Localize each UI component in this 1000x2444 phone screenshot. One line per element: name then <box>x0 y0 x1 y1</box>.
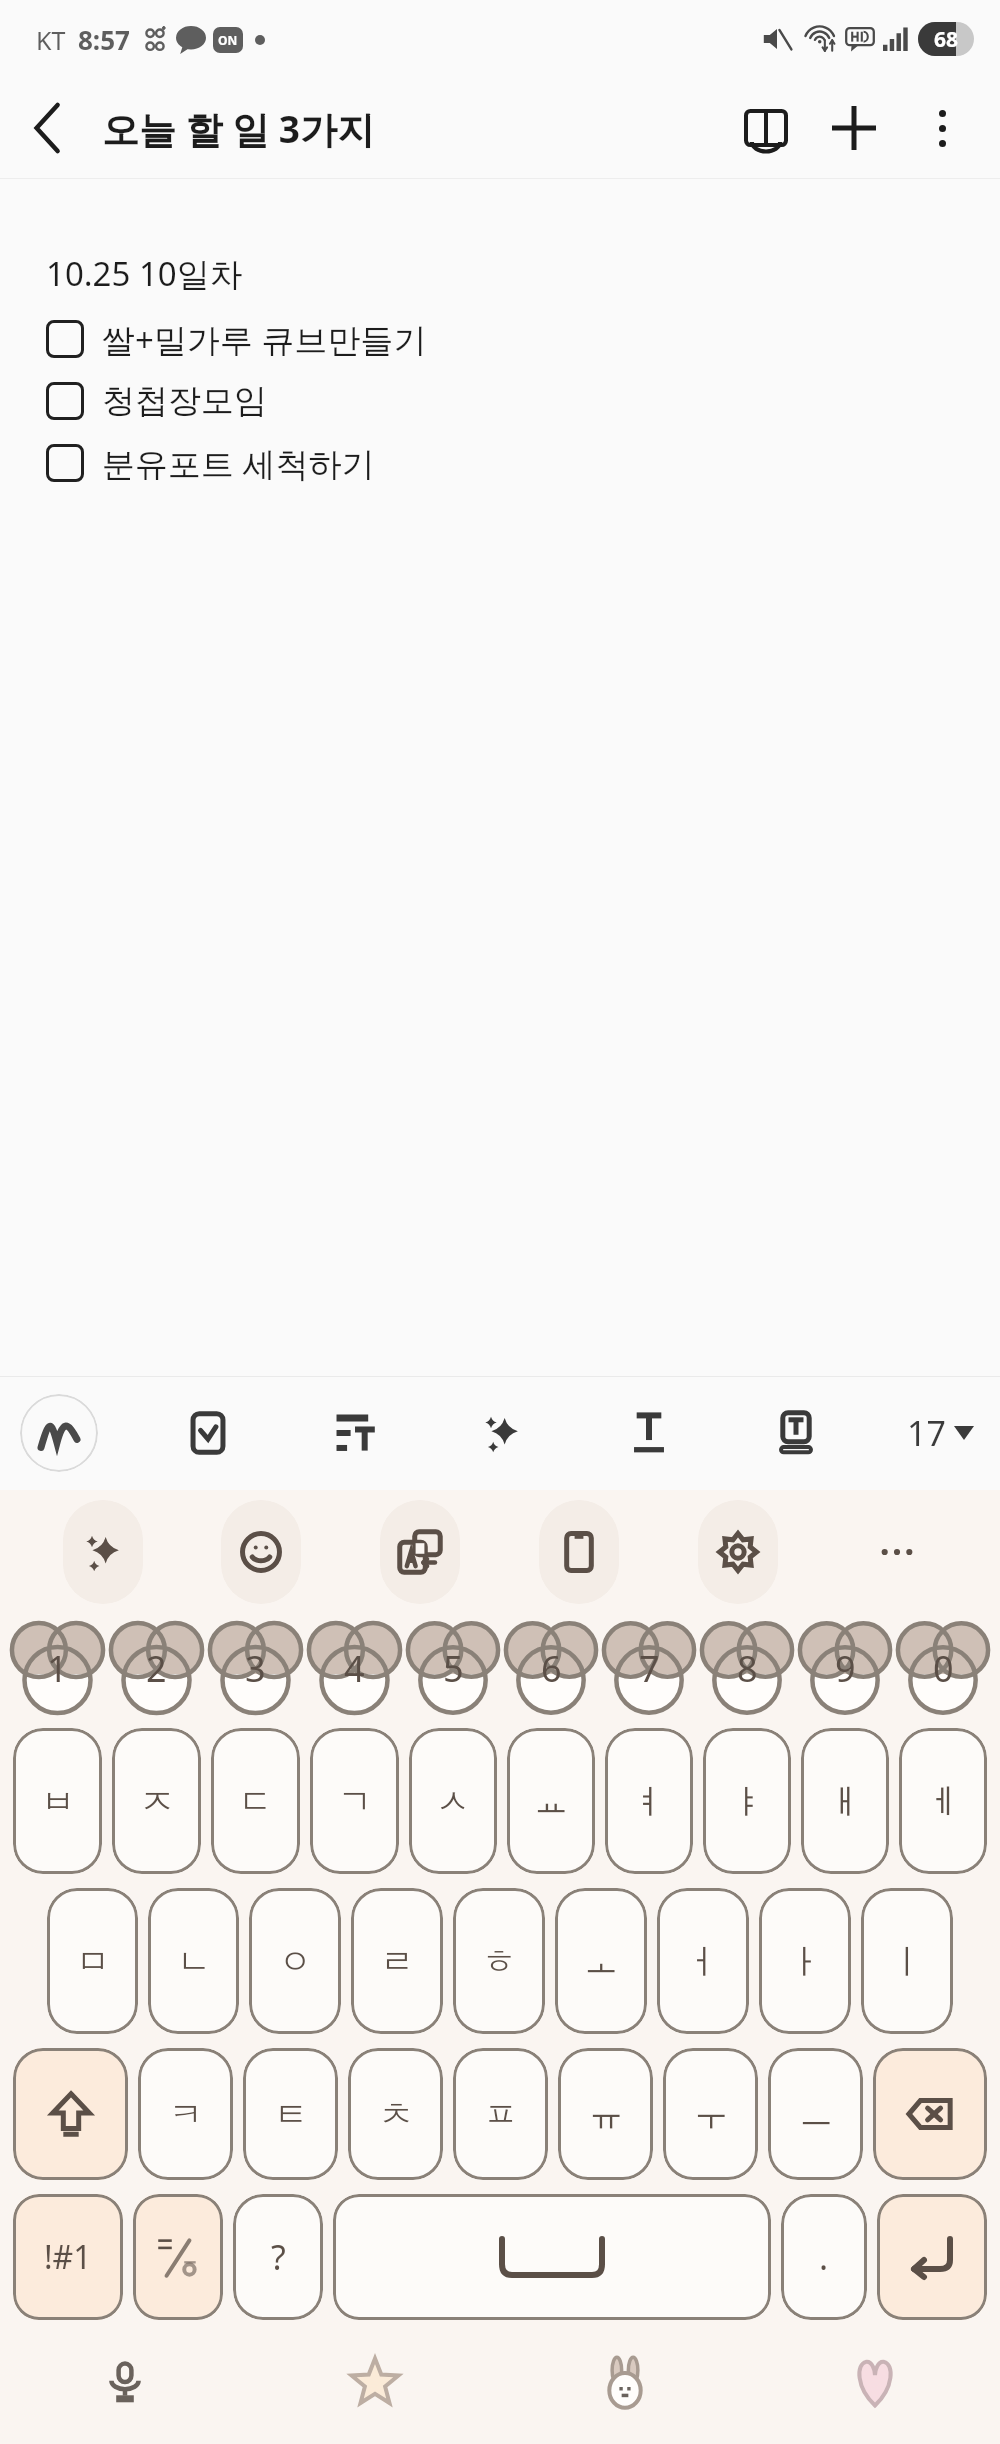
button[interactable]: Emoji <box>221 1500 301 1604</box>
button[interactable]: ㅅ <box>409 1728 497 1874</box>
button[interactable]: ㄷ <box>211 1728 300 1874</box>
button[interactable]: 쌀+밀가루 큐브만들기 <box>46 308 1000 370</box>
button[interactable]: Translate <box>380 1500 460 1604</box>
button[interactable]: 5 <box>407 1618 499 1718</box>
staticText: ㅅ <box>436 1780 470 1823</box>
button[interactable]: 6 <box>505 1618 597 1718</box>
button[interactable]: Pen <box>20 1394 98 1472</box>
staticText: !#1 <box>44 2235 92 2279</box>
button[interactable]: 분유포트 세척하기 <box>46 432 1000 494</box>
button[interactable]: ㅋ <box>138 2048 233 2180</box>
staticText: ㄱ <box>338 1780 372 1823</box>
staticText: 6 <box>541 1644 562 1693</box>
button[interactable]: ㅂ <box>13 1728 102 1874</box>
button[interactable]: 4 <box>308 1618 401 1718</box>
button[interactable]: ㅗ <box>555 1888 647 2034</box>
button[interactable]: ㅛ <box>507 1728 595 1874</box>
button[interactable]: ㅁ <box>47 1888 138 2034</box>
staticText: 68 <box>934 25 959 54</box>
staticText: ㄹ <box>380 1940 414 1983</box>
button[interactable]: ㄴ <box>148 1888 239 2034</box>
button[interactable]: More options <box>898 84 986 172</box>
staticText: ㅓ <box>686 1940 720 1983</box>
button[interactable]: 3 <box>209 1618 302 1718</box>
button[interactable]: ㅐ <box>801 1728 889 1874</box>
button[interactable]: ㅡ <box>768 2048 863 2180</box>
button[interactable]: 8 <box>701 1618 793 1718</box>
button[interactable]: Stickers <box>500 2320 750 2444</box>
button[interactable]: AI assist <box>466 1397 538 1469</box>
button[interactable]: 1 <box>11 1618 104 1718</box>
staticText: ㅎ <box>482 1940 516 1983</box>
button[interactable]: ㅎ <box>453 1888 545 2034</box>
button[interactable]: . <box>781 2194 867 2320</box>
button[interactable]: ㅏ <box>759 1888 851 2034</box>
staticText: ㅇ <box>278 1940 312 1983</box>
button[interactable]: Theme <box>750 2320 1000 2444</box>
button[interactable]: ㅜ <box>663 2048 758 2180</box>
button[interactable]: Shift <box>13 2048 128 2180</box>
button[interactable]: Favorites <box>250 2320 500 2444</box>
button[interactable]: 2 <box>110 1618 203 1718</box>
button[interactable]: ㅓ <box>657 1888 749 2034</box>
button[interactable]: Text color <box>613 1397 685 1469</box>
button[interactable]: 청첩장모임 <box>46 370 1000 432</box>
button[interactable]: Voice input <box>0 2320 250 2444</box>
button[interactable]: Backspace <box>873 2048 987 2180</box>
button[interactable]: ㅠ <box>558 2048 653 2180</box>
button[interactable]: ㅍ <box>453 2048 548 2180</box>
button[interactable]: Highlight <box>760 1397 832 1469</box>
button[interactable]: ㅈ <box>112 1728 201 1874</box>
button[interactable]: Back <box>0 80 96 176</box>
button[interactable]: 17 <box>907 1410 974 1456</box>
button[interactable]: 0 <box>897 1618 989 1718</box>
staticText: ㅑ <box>730 1780 764 1823</box>
staticText: 8 <box>737 1644 758 1693</box>
staticText: . <box>819 2234 829 2280</box>
button[interactable]: Paragraph style <box>319 1397 391 1469</box>
button[interactable]: ㅊ <box>348 2048 443 2180</box>
staticText: ㅊ <box>379 2093 413 2136</box>
button[interactable]: ㅔ <box>899 1728 987 1874</box>
staticText: ㄴ <box>177 1940 211 1983</box>
staticText: ㅌ <box>274 2093 308 2136</box>
button[interactable]: Enter <box>877 2194 987 2320</box>
button[interactable]: ㅇ <box>249 1888 341 2034</box>
button[interactable]: More <box>857 1500 937 1604</box>
staticText: 분유포트 세척하기 <box>102 441 375 486</box>
staticText: 2 <box>146 1644 167 1693</box>
button[interactable]: ㅌ <box>243 2048 338 2180</box>
button[interactable]: ? <box>233 2194 323 2320</box>
button[interactable]: !#1 <box>13 2194 123 2320</box>
staticText: ㅋ <box>169 2093 203 2136</box>
button[interactable]: Language <box>133 2194 223 2320</box>
button[interactable]: ㄹ <box>351 1888 443 2034</box>
button[interactable]: Space <box>333 2194 771 2320</box>
staticText: ON <box>218 32 238 48</box>
button[interactable]: Checklist <box>172 1397 244 1469</box>
staticText: ㅜ <box>694 2093 728 2136</box>
staticText: 0 <box>933 1644 954 1693</box>
button[interactable]: 9 <box>799 1618 891 1718</box>
button[interactable]: ㅣ <box>861 1888 953 2034</box>
button[interactable]: Clipboard <box>539 1500 619 1604</box>
staticText: KT <box>36 23 66 57</box>
staticText: ㅡ <box>799 2093 833 2136</box>
button[interactable]: Add <box>810 84 898 172</box>
staticText: ㅍ <box>484 2093 518 2136</box>
staticText: ㅕ <box>632 1780 666 1823</box>
button[interactable]: Reading view <box>722 84 810 172</box>
staticText: 9 <box>835 1644 856 1693</box>
button[interactable]: Settings <box>698 1500 778 1604</box>
button[interactable]: ㅕ <box>605 1728 693 1874</box>
staticText: 10.25 10일차 <box>46 251 243 296</box>
button[interactable]: AI <box>63 1500 143 1604</box>
button[interactable]: ㅑ <box>703 1728 791 1874</box>
staticText: ㅔ <box>926 1780 960 1823</box>
staticText: 8:57 <box>78 22 130 57</box>
button[interactable]: ㄱ <box>310 1728 399 1874</box>
staticText: ㅐ <box>828 1780 862 1823</box>
button[interactable]: 7 <box>603 1618 695 1718</box>
staticText: ㅣ <box>890 1940 924 1983</box>
staticText: 오늘 할 일 3가지 <box>102 103 375 154</box>
